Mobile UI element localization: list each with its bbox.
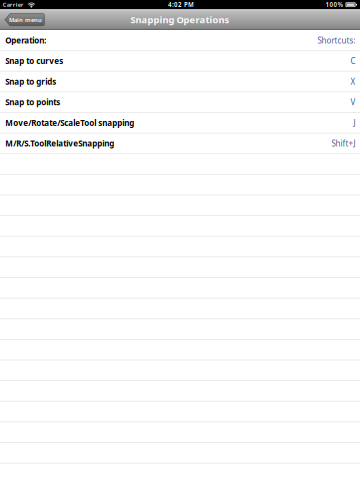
staticText: Snap to grids xyxy=(5,76,56,87)
staticText: Move/Rotate/ScaleTool snapping xyxy=(5,117,134,128)
button[interactable]: Snap to points xyxy=(0,92,360,112)
staticText: Shift+J xyxy=(331,138,355,149)
staticText: Main menu xyxy=(9,16,42,24)
button[interactable]: Snap to grids xyxy=(0,71,360,92)
staticText: V xyxy=(350,97,355,107)
staticText: Snap to curves xyxy=(5,56,63,66)
button[interactable]: Main menu xyxy=(4,13,44,26)
staticText: 4:02 PM xyxy=(168,0,194,9)
staticText: Snap to points xyxy=(5,97,60,107)
staticText: M/R/S.ToolRelativeSnapping xyxy=(5,138,114,149)
button[interactable]: Snap to curves xyxy=(0,51,360,71)
staticText: Operation: xyxy=(5,35,46,46)
button[interactable]: Move/Rotate/ScaleTool snapping xyxy=(0,112,360,133)
staticText: X xyxy=(350,76,355,87)
staticText: Shortcuts: xyxy=(317,35,355,46)
button[interactable]: M/R/S.ToolRelativeSnapping xyxy=(0,133,360,154)
staticText: J xyxy=(353,117,355,128)
button[interactable]: Operation: xyxy=(0,30,360,51)
staticText: 100% xyxy=(325,0,343,9)
staticText: Carrier xyxy=(3,1,24,8)
staticText: C xyxy=(350,56,355,66)
staticText: Snapping Operations xyxy=(130,13,229,26)
